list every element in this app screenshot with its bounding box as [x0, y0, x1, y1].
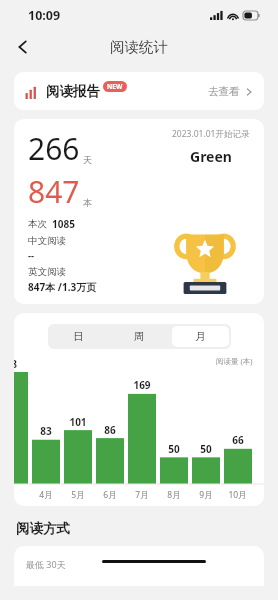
staticText: 10月 [228, 489, 247, 501]
staticText: 阅读量 (本) [216, 356, 253, 366]
staticText: 10:09 [28, 7, 61, 24]
staticText: 本 [83, 197, 92, 208]
staticText: 5月 [71, 489, 85, 501]
staticText: Green [190, 147, 232, 166]
staticText: 2023.01.01开始记录 [172, 128, 250, 140]
staticText: 7月 [135, 489, 149, 501]
staticText: 中文阅读 [28, 235, 66, 247]
staticText: 8月 [167, 489, 181, 501]
staticText: 英文阅读 [28, 266, 66, 278]
staticText: 6月 [103, 489, 117, 501]
staticText: NEW [107, 82, 123, 91]
staticText: 天 [83, 154, 92, 165]
button[interactable]: Back [6, 30, 40, 64]
staticText: 266 [28, 128, 80, 169]
staticText: 阅读方式 [16, 520, 70, 537]
button[interactable]: 月 [172, 326, 229, 347]
button[interactable]: 日 [50, 326, 107, 347]
staticText: 月 [195, 330, 206, 343]
staticText: 周 [134, 330, 145, 343]
button[interactable]: 266 [14, 119, 264, 304]
staticText: 9月 [199, 489, 213, 501]
staticText: 阅读报告 [46, 83, 100, 100]
staticText: 101 [69, 415, 87, 429]
staticText: 去查看 [208, 85, 240, 98]
staticText: 本次 [28, 218, 47, 230]
staticText: 阅读统计 [110, 38, 168, 56]
staticText: 日 [73, 330, 84, 343]
staticText: | [14, 489, 16, 501]
staticText: 50 [168, 442, 180, 456]
staticText: 83 [40, 424, 52, 438]
staticText: 4月 [39, 489, 53, 501]
staticText: 847本 /1.3万页 [28, 280, 97, 294]
staticText: 50 [200, 442, 212, 456]
staticText: 1085 [52, 217, 75, 231]
staticText: 847 [28, 171, 80, 212]
staticText: 169 [133, 378, 151, 392]
staticText: 8 [14, 357, 17, 371]
staticText: 86 [104, 423, 116, 437]
button[interactable]: 阅读报告 [14, 72, 264, 110]
staticText: -- [28, 249, 35, 262]
staticText: 最低 30天 [26, 558, 66, 570]
staticText: 66 [232, 433, 244, 447]
button[interactable]: 周 [111, 326, 168, 347]
